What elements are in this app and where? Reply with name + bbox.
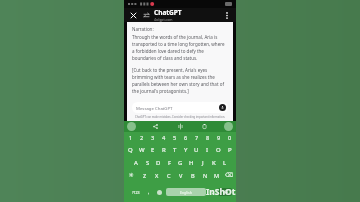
button[interactable]: , (144, 184, 154, 200)
button[interactable]: D (153, 156, 164, 169)
button[interactable]: 9 (213, 132, 224, 143)
button[interactable]: Switch model (142, 11, 151, 20)
staticText: W (139, 146, 145, 154)
button[interactable]: T (169, 143, 180, 156)
button[interactable]: 4 (158, 132, 169, 143)
button[interactable]: O (213, 143, 224, 156)
staticText: [Cut back to the present, Aria's eyes br… (132, 67, 228, 94)
button[interactable]: 5 (169, 132, 180, 143)
staticText: ?123 (132, 190, 140, 195)
staticText: 4 (162, 134, 166, 142)
staticText: X (155, 172, 159, 180)
staticText: I (206, 146, 209, 154)
button[interactable]: More options (222, 11, 231, 20)
staticText: ⌫ (225, 172, 233, 179)
button[interactable]: N (199, 169, 211, 182)
staticText: D (156, 159, 161, 167)
button[interactable]: P (224, 143, 235, 156)
button[interactable]: W (136, 143, 147, 156)
button[interactable]: ?123 (127, 184, 144, 200)
staticText: S (146, 159, 150, 167)
button[interactable]: A (130, 156, 142, 169)
staticText: ✳ (129, 172, 134, 179)
staticText: 4o/gpt.com (154, 17, 173, 22)
button[interactable]: Message ChatGPT (132, 102, 228, 113)
staticText: 3 (151, 134, 155, 142)
button[interactable]: I (202, 143, 213, 156)
staticText: ChatGPT (154, 8, 182, 17)
staticText: T (173, 146, 177, 154)
staticText: Through the words of the journal, Aria i… (132, 34, 228, 61)
button[interactable]: B (187, 169, 199, 182)
staticText: V (179, 172, 183, 180)
button[interactable]: Z (138, 169, 151, 182)
button[interactable]: U (191, 143, 202, 156)
button[interactable]: Q (125, 143, 136, 156)
staticText: Y (184, 146, 188, 154)
button[interactable]: X (151, 169, 163, 182)
staticText: R (162, 146, 166, 154)
staticText: Z (143, 172, 147, 180)
button[interactable]: English (166, 188, 206, 196)
button[interactable]: 1 (125, 132, 136, 143)
staticText: Message ChatGPT (136, 105, 173, 111)
staticText: Narration: (132, 26, 154, 32)
button[interactable]: E (147, 143, 158, 156)
button[interactable]: ✳ (125, 169, 138, 182)
staticText: 0 (228, 134, 232, 142)
button[interactable]: S (142, 156, 153, 169)
button[interactable]: Share (151, 122, 160, 131)
staticText: H (189, 159, 194, 167)
button[interactable]: F (164, 156, 175, 169)
staticText: J (202, 159, 204, 167)
staticText: 7 (195, 134, 199, 142)
button[interactable]: ⌫ (223, 169, 235, 182)
button[interactable]: Enter (218, 188, 232, 196)
staticText: M (214, 172, 220, 180)
staticText: B (191, 172, 195, 180)
staticText: , (148, 189, 150, 196)
staticText: 9 (217, 134, 221, 142)
button[interactable]: Voice typing (176, 122, 185, 131)
button[interactable]: V (175, 169, 187, 182)
staticText: C (167, 172, 171, 180)
button[interactable]: 2 (136, 132, 147, 143)
staticText: 6 (184, 134, 188, 142)
button[interactable]: . (208, 184, 217, 200)
button[interactable]: L (219, 156, 230, 169)
staticText: InShOt (206, 186, 236, 198)
button[interactable]: R (158, 143, 169, 156)
staticText: K (212, 159, 216, 167)
staticText: ChatGPT can make mistakes. Consider chec… (132, 115, 228, 119)
button[interactable]: H (186, 156, 197, 169)
staticText: E (151, 146, 155, 154)
button[interactable]: Gboard menu (127, 122, 136, 131)
button[interactable]: 0 (224, 132, 235, 143)
button[interactable]: 3 (147, 132, 158, 143)
button[interactable]: J (197, 156, 208, 169)
staticText: English (180, 190, 192, 195)
button[interactable]: 8 (202, 132, 213, 143)
button[interactable]: C (163, 169, 175, 182)
button[interactable]: 7 (191, 132, 202, 143)
button[interactable]: M (211, 169, 223, 182)
button[interactable]: Keyboard settings (224, 122, 233, 131)
staticText: N (203, 172, 208, 180)
staticText: L (223, 159, 227, 167)
staticText: F (168, 159, 172, 167)
staticText: 8 (206, 134, 210, 142)
button[interactable]: Y (180, 143, 191, 156)
staticText: U (194, 146, 199, 154)
staticText: 5 (173, 134, 177, 142)
staticText: P (228, 146, 232, 154)
staticText: 1 (129, 134, 133, 142)
staticText: O (216, 146, 221, 154)
staticText: A (134, 159, 138, 167)
button[interactable]: G (175, 156, 186, 169)
button[interactable]: Emoji (154, 184, 164, 200)
button[interactable]: 6 (180, 132, 191, 143)
button[interactable]: Clipboard (200, 122, 209, 131)
button[interactable]: K (208, 156, 219, 169)
button[interactable]: Close (129, 11, 138, 20)
staticText: 2 (140, 134, 144, 142)
